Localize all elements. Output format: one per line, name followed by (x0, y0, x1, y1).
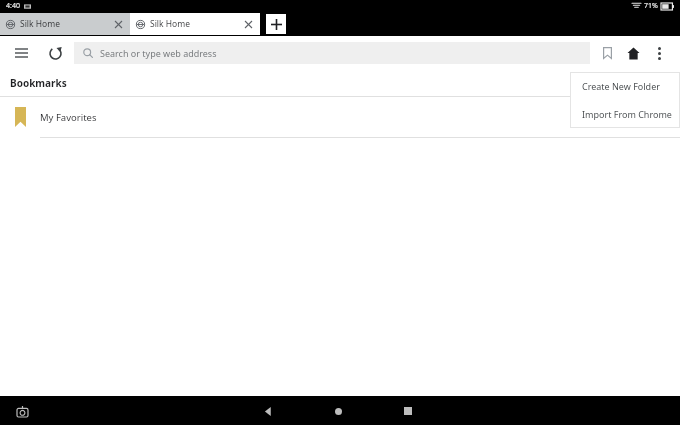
button[interactable]: Back (255, 398, 281, 424)
button[interactable]: Close tab (112, 18, 124, 30)
button[interactable]: New tab (266, 14, 286, 34)
button[interactable]: Silk Home (130, 13, 260, 35)
button[interactable]: Reload (42, 40, 68, 66)
staticText: Create New Folder (582, 80, 660, 92)
button[interactable]: Screenshot (10, 399, 34, 423)
staticText: Silk Home (150, 18, 242, 30)
staticText: Silk Home (20, 18, 112, 30)
staticText: Import From Chrome (582, 108, 672, 120)
button[interactable]: Home (325, 398, 351, 424)
button[interactable]: Recents (395, 398, 421, 424)
button[interactable]: Menu (8, 40, 34, 66)
staticText: Bookmarks (10, 76, 67, 90)
button[interactable]: Silk Home (0, 13, 130, 35)
staticText: Search or type web address (100, 47, 217, 59)
button[interactable]: Close tab (242, 18, 254, 30)
button[interactable]: Import From Chrome (570, 100, 680, 128)
button[interactable]: Bookmark (594, 40, 620, 66)
staticText: My Favorites (40, 111, 97, 124)
button[interactable]: Search or type web address (74, 42, 590, 64)
button[interactable]: More options (646, 40, 672, 66)
staticText: 4:40 (6, 1, 20, 11)
button[interactable]: My Favorites (0, 97, 680, 137)
staticText: 71% (644, 1, 658, 11)
button[interactable]: Create New Folder (570, 72, 680, 100)
button[interactable]: Home (620, 40, 646, 66)
